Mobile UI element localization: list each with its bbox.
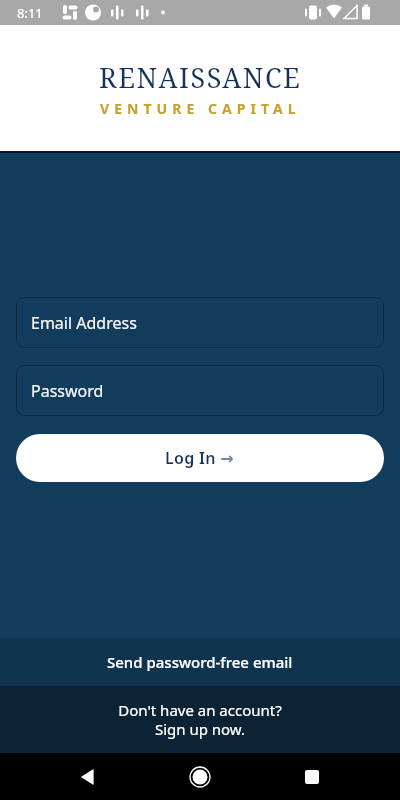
staticText: Don't have an account? Sign up now.	[118, 700, 282, 739]
staticText: Log In →	[165, 447, 235, 469]
button[interactable]	[288, 753, 336, 800]
button[interactable]: Log In →	[16, 434, 384, 482]
staticText: 8:11	[17, 4, 43, 22]
staticText: VENTURE CAPITAL	[100, 99, 301, 118]
button[interactable]	[64, 753, 112, 800]
button[interactable]: Don't have an account? Sign up now.	[0, 686, 400, 753]
button[interactable]: Email Address	[16, 297, 384, 348]
staticText: Send password-free email	[107, 652, 293, 672]
button[interactable]: Send password-free email	[0, 638, 400, 686]
staticText: Email Address	[31, 312, 137, 334]
staticText: RENAISSANCE	[99, 59, 302, 96]
staticText: Password	[31, 380, 104, 402]
button[interactable]: Password	[16, 365, 384, 416]
button[interactable]	[176, 753, 224, 800]
